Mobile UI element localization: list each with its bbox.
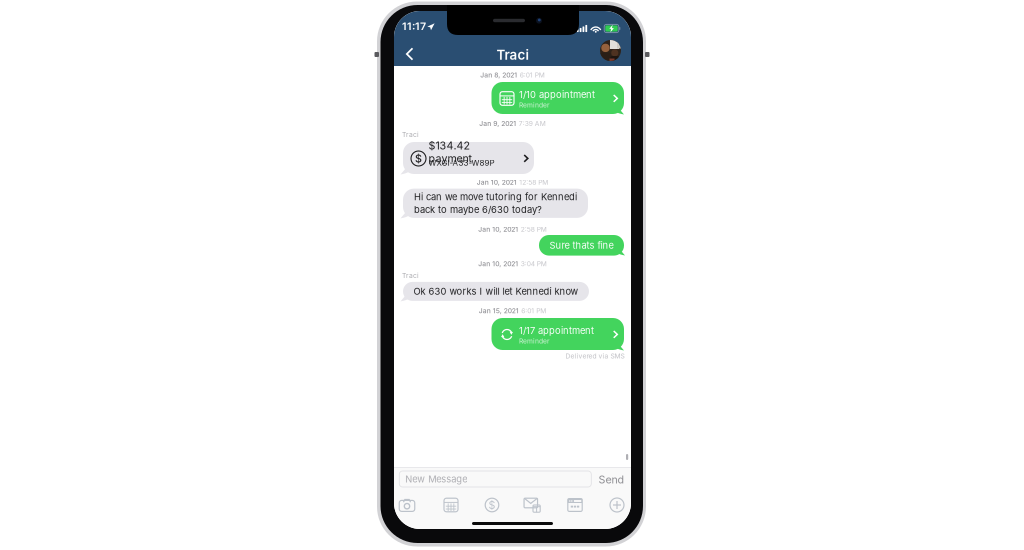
staticText: Jan 15, 2021 [479, 307, 519, 315]
staticText: 6:01 PM [520, 71, 545, 79]
staticText: 2:58 PM [521, 225, 547, 233]
staticText: 11:17 [402, 20, 426, 33]
staticText: $ [415, 152, 422, 165]
staticText: Traci [402, 272, 419, 279]
staticText: Jan 10, 2021 [477, 178, 517, 186]
staticText: Jan 10, 2021 [478, 260, 518, 268]
staticText: $ [488, 499, 495, 511]
staticText: Send [598, 473, 624, 486]
staticText: 12:58 PM [519, 178, 548, 186]
button[interactable]: Profile photo [600, 40, 621, 61]
button[interactable]: New Message [399, 471, 591, 487]
staticText: 3:04 PM [521, 260, 547, 268]
staticText: Jan 8, 2021 [480, 71, 517, 79]
button[interactable]: More options [606, 496, 628, 514]
button[interactable]: Send [598, 473, 624, 486]
button[interactable]: Calendar [440, 496, 462, 514]
staticText: Ok 630 works I will let Kennedi know [413, 286, 578, 297]
staticText: Sure thats fine [549, 240, 613, 251]
staticText: $134.42 payment [428, 139, 471, 165]
button[interactable]: Camera [396, 496, 418, 514]
staticText: back to maybe 6/630 today? [414, 204, 542, 215]
button[interactable]: Email template [521, 496, 543, 514]
button[interactable]: Request payment [481, 496, 503, 514]
staticText: Traci [496, 47, 528, 63]
staticText: 1/10 appointment [519, 89, 595, 100]
staticText: Traci [402, 131, 419, 138]
staticText: Reminder [519, 337, 550, 345]
button[interactable]: Back [398, 43, 422, 65]
staticText: Jan 9, 2021 [479, 120, 516, 127]
staticText: 7:39 AM [519, 120, 546, 127]
staticText: Jan 10, 2021 [478, 225, 518, 233]
staticText: 1/17 appointment [519, 325, 594, 336]
staticText: Hi can we move tutoring for Kennedi [414, 191, 577, 202]
staticText: 6:01 PM [521, 307, 546, 315]
staticText: Delivered via SMS [565, 352, 624, 360]
staticText: WXGI-A33-W89P [428, 158, 494, 167]
staticText: Reminder [519, 101, 550, 109]
button[interactable]: Website link [564, 496, 586, 514]
staticText: New Message [405, 473, 467, 484]
